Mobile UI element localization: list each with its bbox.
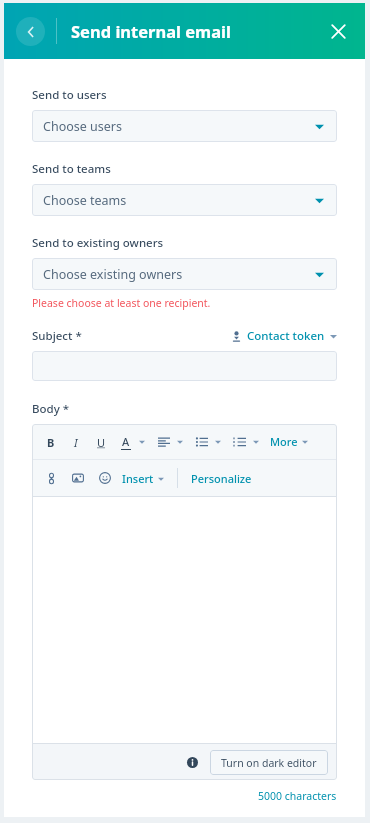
button[interactable]: Turn on dark editor — [210, 750, 328, 775]
staticText: Choose existing owners — [43, 266, 183, 283]
button[interactable]: Align — [156, 434, 172, 450]
button[interactable]: More — [270, 434, 308, 449]
staticText: More — [270, 434, 298, 449]
button[interactable]: Bold — [43, 434, 59, 450]
button[interactable]: Choose existing owners — [32, 258, 337, 290]
button[interactable]: Insert emoji — [97, 470, 113, 486]
staticText: A — [122, 434, 130, 449]
staticText: Contact token — [247, 328, 325, 344]
staticText: Insert — [122, 471, 154, 486]
staticText: Send to existing owners — [32, 235, 164, 251]
button[interactable]: Italic — [68, 434, 84, 450]
staticText: B — [47, 435, 55, 450]
button[interactable]: Text color — [118, 434, 134, 450]
staticText: Send to teams — [32, 161, 111, 177]
staticText: Please choose at least one recipient. — [32, 296, 211, 310]
button[interactable]: Close — [321, 14, 355, 48]
staticText: Choose users — [43, 118, 122, 135]
button[interactable]: Bulleted list — [194, 434, 210, 450]
button[interactable]: Info — [182, 752, 202, 772]
button[interactable] — [32, 351, 337, 381]
staticText: U — [97, 435, 106, 450]
button[interactable]: Numbered list — [232, 434, 248, 450]
button[interactable]: Personalize — [191, 471, 252, 486]
button[interactable]: Insert image — [70, 470, 86, 486]
button[interactable]: Insert link — [43, 470, 59, 486]
button[interactable]: Insert — [122, 471, 164, 486]
button[interactable]: Contact token — [231, 328, 337, 344]
staticText: Send to users — [32, 87, 107, 103]
button[interactable]: Back — [16, 17, 45, 46]
staticText: Turn on dark editor — [221, 756, 317, 770]
staticText: 5000 characters — [258, 789, 337, 803]
button[interactable]: Choose users — [32, 110, 337, 142]
staticText: Send internal email — [71, 20, 231, 42]
staticText: Choose teams — [43, 192, 127, 209]
button[interactable]: Choose teams — [32, 184, 337, 216]
button[interactable]: Underline — [93, 434, 109, 450]
staticText: I — [74, 435, 78, 450]
staticText: Body * — [32, 401, 70, 417]
staticText: Subject * — [32, 328, 82, 344]
